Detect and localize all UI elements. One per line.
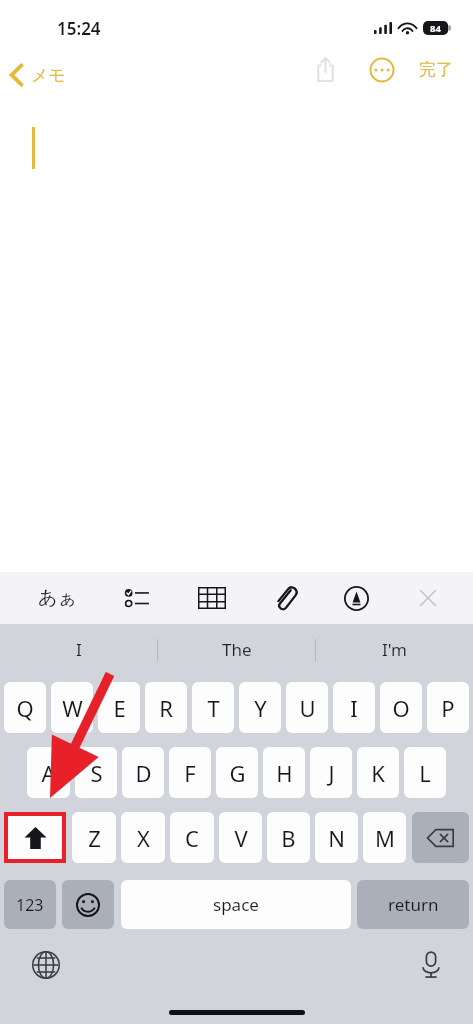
staticText: Q xyxy=(16,693,34,723)
button[interactable]: The xyxy=(158,624,315,675)
staticText: W xyxy=(62,693,83,723)
staticText: C xyxy=(185,823,199,853)
button[interactable]: V xyxy=(219,812,262,863)
button[interactable]: More options xyxy=(363,51,401,89)
staticText: 15:24 xyxy=(57,17,101,40)
staticText: space xyxy=(213,893,259,916)
button[interactable]: G xyxy=(216,747,258,798)
staticText: L xyxy=(419,758,431,788)
staticText: T xyxy=(207,693,220,723)
staticText: P xyxy=(441,693,455,723)
button[interactable]: Close xyxy=(409,579,447,617)
staticText: Z xyxy=(88,823,101,853)
button[interactable]: return xyxy=(357,880,469,929)
button[interactable]: Shift xyxy=(8,816,62,859)
button[interactable]: X xyxy=(121,812,165,863)
button[interactable]: Checklist xyxy=(116,579,158,617)
staticText: O xyxy=(392,693,410,723)
button[interactable]: Y xyxy=(239,682,281,733)
button[interactable]: R xyxy=(145,682,187,733)
staticText: K xyxy=(371,758,385,788)
staticText: あぁ xyxy=(38,586,77,610)
button[interactable]: Z xyxy=(72,812,116,863)
button[interactable]: F xyxy=(169,747,211,798)
button[interactable]: B xyxy=(267,812,310,863)
staticText: F xyxy=(184,758,196,788)
button[interactable]: Q xyxy=(4,682,46,733)
staticText: J xyxy=(328,758,335,788)
button[interactable]: P xyxy=(427,682,469,733)
staticText: I xyxy=(350,693,358,723)
button[interactable]: A xyxy=(27,747,70,798)
staticText: H xyxy=(276,758,293,788)
staticText: N xyxy=(328,823,345,853)
button[interactable]: N xyxy=(315,812,358,863)
button[interactable]: I xyxy=(0,624,157,675)
staticText: E xyxy=(113,693,126,723)
staticText: S xyxy=(90,758,103,788)
button[interactable]: Backspace xyxy=(412,812,469,863)
button[interactable]: 完了 xyxy=(413,53,459,86)
button[interactable]: L xyxy=(404,747,446,798)
staticText: B xyxy=(281,823,296,853)
button[interactable]: 123 xyxy=(4,880,56,929)
button[interactable]: Share xyxy=(306,47,345,92)
staticText: R xyxy=(159,693,173,723)
staticText: return xyxy=(388,893,439,916)
staticText: Y xyxy=(254,693,267,723)
staticText: U xyxy=(299,693,316,723)
button[interactable]: S xyxy=(75,747,117,798)
staticText: V xyxy=(234,823,248,853)
staticText: 123 xyxy=(16,894,44,916)
staticText: The xyxy=(222,638,252,661)
staticText: G xyxy=(229,758,246,788)
staticText: D xyxy=(135,758,152,788)
button[interactable]: Attach xyxy=(266,577,304,619)
staticText: I xyxy=(76,638,82,661)
button[interactable]: あぁ xyxy=(30,578,85,618)
staticText: M xyxy=(375,823,395,853)
staticText: I'm xyxy=(382,638,407,661)
button[interactable]: T xyxy=(192,682,234,733)
staticText: 84 xyxy=(430,22,441,35)
button[interactable]: W xyxy=(51,682,93,733)
button[interactable]: I'm xyxy=(316,624,473,675)
staticText: 完了 xyxy=(419,59,453,80)
button[interactable]: O xyxy=(380,682,422,733)
staticText: A xyxy=(41,758,56,788)
button[interactable]: D xyxy=(122,747,164,798)
staticText: メモ xyxy=(31,65,66,86)
button[interactable]: E xyxy=(98,682,140,733)
button[interactable]: space xyxy=(121,880,351,929)
button[interactable]: Change keyboard xyxy=(28,947,64,983)
button[interactable]: Emoji xyxy=(62,880,114,929)
button[interactable]: Markup xyxy=(336,578,377,619)
button[interactable]: Table xyxy=(190,579,234,617)
button[interactable]: メモ xyxy=(0,58,78,92)
button[interactable]: C xyxy=(170,812,214,863)
staticText: X xyxy=(137,823,150,853)
button[interactable]: U xyxy=(286,682,328,733)
button[interactable]: J xyxy=(310,747,352,798)
button[interactable]: I xyxy=(333,682,375,733)
button[interactable]: M xyxy=(363,812,406,863)
button[interactable]: Dictation xyxy=(417,947,445,983)
button[interactable]: H xyxy=(263,747,305,798)
button[interactable]: K xyxy=(357,747,399,798)
